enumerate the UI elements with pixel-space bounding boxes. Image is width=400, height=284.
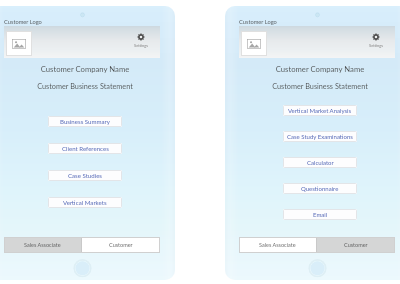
staticText: Client References: [62, 145, 109, 152]
staticText: Sales Associate: [24, 242, 61, 249]
button[interactable]: Questionnaire: [283, 183, 357, 194]
button[interactable]: Customer: [82, 237, 160, 253]
staticText: Case Studies: [68, 172, 102, 179]
button[interactable]: Case Study Examinations: [283, 131, 357, 142]
staticText: Customer Logo: [4, 18, 42, 25]
staticText: Settings: [369, 43, 384, 48]
button[interactable]: Calculator: [283, 157, 357, 168]
staticText: Case Study Examinations: [287, 133, 353, 140]
staticText: Vertical Market Analysis: [288, 107, 352, 114]
staticText: Customer Business Statement: [7, 82, 163, 91]
staticText: Email: [313, 211, 328, 218]
staticText: Business Summary: [60, 118, 110, 125]
staticText: Customer: [109, 242, 133, 249]
button[interactable]: Sales Associate: [239, 237, 316, 253]
staticText: Customer Business Statement: [242, 82, 398, 91]
staticText: Customer: [344, 242, 368, 249]
staticText: Sales Associate: [259, 242, 296, 249]
staticText: Questionnaire: [301, 185, 339, 192]
button[interactable]: Settings: [133, 33, 149, 48]
button[interactable]: Email: [283, 209, 357, 220]
staticText: Customer Company Name: [7, 64, 163, 73]
staticText: Calculator: [307, 159, 334, 166]
staticText: Settings: [134, 43, 149, 48]
button[interactable]: Settings: [368, 33, 384, 48]
button[interactable]: Customer logo: [6, 31, 32, 56]
button[interactable]: Client References: [48, 143, 122, 154]
staticText: Customer Logo: [239, 18, 277, 25]
staticText: Customer Company Name: [242, 64, 398, 73]
button[interactable]: Customer: [317, 237, 395, 253]
staticText: Vertical Markets: [63, 199, 107, 206]
button[interactable]: Vertical Market Analysis: [283, 105, 357, 116]
button[interactable]: Customer logo: [241, 31, 267, 56]
button[interactable]: Business Summary: [48, 116, 122, 127]
button[interactable]: Vertical Markets: [48, 197, 122, 208]
button[interactable]: Sales Associate: [4, 237, 81, 253]
button[interactable]: Case Studies: [48, 170, 122, 181]
